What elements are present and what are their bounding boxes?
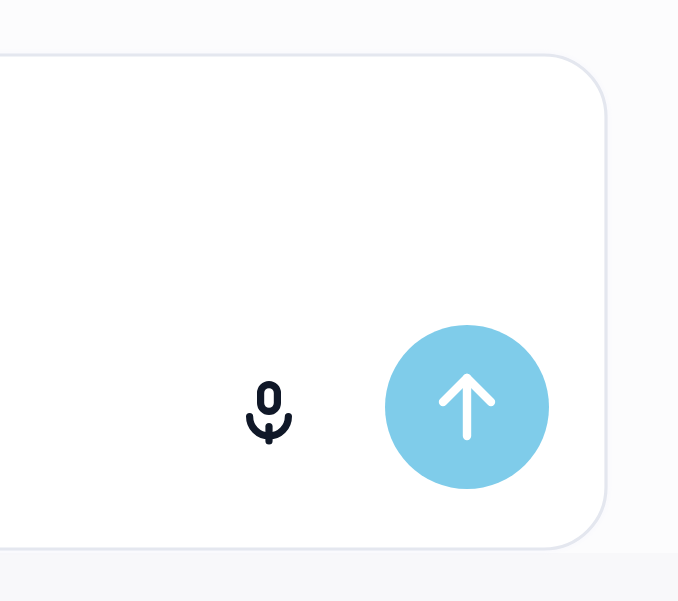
button[interactable]: Send — [385, 325, 549, 489]
button[interactable]: Voice input — [225, 366, 313, 454]
